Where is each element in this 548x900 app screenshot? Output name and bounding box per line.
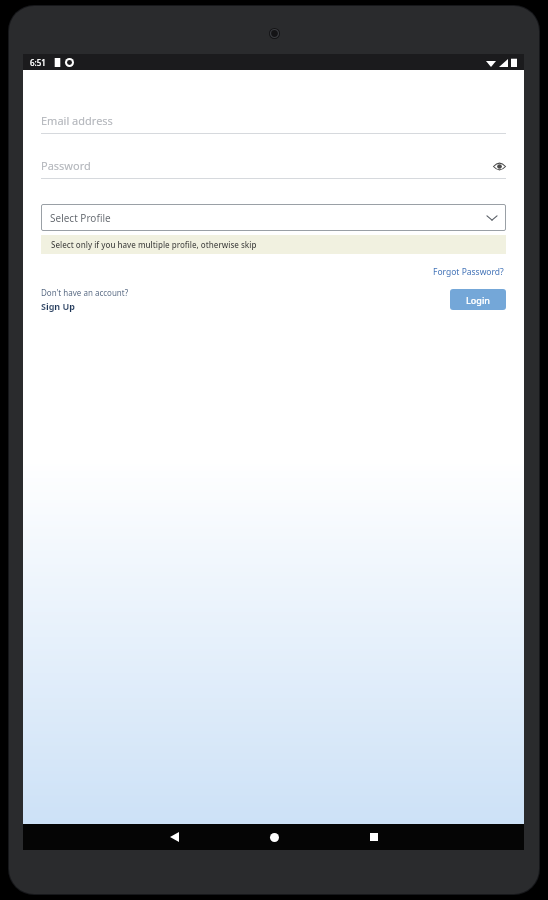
button[interactable]: Forgot Password? xyxy=(431,264,506,280)
button[interactable]: Email address xyxy=(41,113,506,134)
button[interactable]: Login xyxy=(450,289,506,310)
other: Show password xyxy=(492,159,506,173)
button[interactable]: Recent apps xyxy=(324,824,424,850)
staticText: Sign Up xyxy=(41,300,76,312)
button[interactable]: Back xyxy=(124,824,224,850)
staticText: Login xyxy=(466,294,490,306)
staticText: Select Profile xyxy=(50,211,111,225)
staticText: Email address xyxy=(41,113,113,128)
staticText: Forgot Password? xyxy=(433,266,504,278)
staticText: Don't have an account? xyxy=(41,287,129,298)
button[interactable]: Select Profile xyxy=(41,204,506,231)
staticText: Select only if you have multiple profile… xyxy=(51,239,257,250)
button[interactable]: Password xyxy=(41,158,506,179)
button[interactable]: Home xyxy=(224,824,324,850)
staticText: Password xyxy=(41,158,91,173)
button[interactable]: Don't have an account? xyxy=(41,286,129,313)
staticText: 6:51 xyxy=(30,57,46,68)
